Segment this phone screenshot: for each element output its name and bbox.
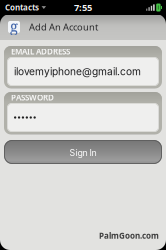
button[interactable]: Sign In	[4, 140, 162, 164]
staticText: PASSWORD	[11, 92, 54, 103]
staticText: EMAIL ADDRESS	[11, 46, 70, 57]
staticText: Sign In	[69, 147, 96, 158]
staticText: g	[10, 16, 18, 36]
button[interactable]: ilovemyiphone@gmail.com	[7, 57, 159, 86]
staticText: Contacts	[5, 2, 39, 13]
staticText: 7:55	[74, 1, 92, 14]
button[interactable]	[7, 103, 159, 132]
button[interactable]: Contacts	[0, 0, 46, 15]
staticText: Add An Account	[29, 21, 98, 33]
staticText: ilovemyiphone@gmail.com	[14, 65, 141, 78]
staticText: PalmGoon.com	[99, 230, 159, 241]
